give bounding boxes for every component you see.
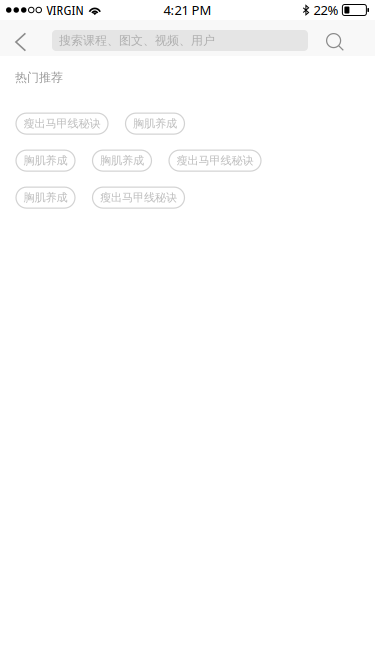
staticText: 22% xyxy=(313,1,338,19)
staticText: 胸肌养成 xyxy=(23,191,67,205)
staticText: 4:21 PM xyxy=(163,1,211,19)
button[interactable]: 瘦出马甲线秘诀 xyxy=(92,187,184,208)
button[interactable]: 搜索课程、图文、视频、用户 xyxy=(52,30,308,51)
button[interactable]: 胸肌养成 xyxy=(16,187,75,208)
button[interactable]: 胸肌养成 xyxy=(92,150,151,171)
staticText: 瘦出马甲线秘诀 xyxy=(23,117,100,131)
staticText: 搜索课程、图文、视频、用户 xyxy=(59,33,215,48)
staticText: 瘦出马甲线秘诀 xyxy=(100,191,177,205)
staticText: 胸肌养成 xyxy=(23,154,67,168)
staticText: 热门推荐 xyxy=(15,70,63,85)
staticText: 胸肌养成 xyxy=(133,117,177,131)
button[interactable]: 瘦出马甲线秘诀 xyxy=(16,113,108,134)
staticText: 瘦出马甲线秘诀 xyxy=(176,154,253,168)
staticText: VIRGIN xyxy=(46,1,83,19)
button[interactable]: Search xyxy=(326,20,356,60)
button[interactable]: 胸肌养成 xyxy=(16,150,75,171)
button[interactable]: 瘦出马甲线秘诀 xyxy=(169,150,261,171)
button[interactable]: Back xyxy=(15,20,40,60)
staticText: 胸肌养成 xyxy=(100,154,144,168)
button[interactable]: 胸肌养成 xyxy=(125,113,184,134)
